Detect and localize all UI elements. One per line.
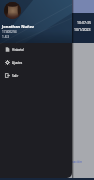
button[interactable]: Ajustes	[0, 56, 72, 69]
other: Historial	[5, 47, 10, 52]
staticText: 17400294	[2, 30, 17, 34]
staticText: Ubicación	[66, 159, 83, 164]
button[interactable]: Historial	[0, 43, 72, 56]
button[interactable]: Ubicación	[66, 159, 83, 164]
staticText: Historial	[12, 48, 24, 52]
staticText: 1.8.3	[2, 35, 10, 39]
staticText: 10/1/2023	[74, 27, 91, 32]
staticText: Salir	[12, 74, 19, 78]
staticText: 10:07:35	[77, 20, 91, 25]
staticText: Jonathan Nuñez	[2, 24, 34, 29]
other: Ajustes	[5, 60, 10, 65]
other: Salir	[5, 73, 10, 78]
staticText: Ajustes	[12, 61, 23, 65]
button[interactable]: Salir	[0, 69, 72, 82]
